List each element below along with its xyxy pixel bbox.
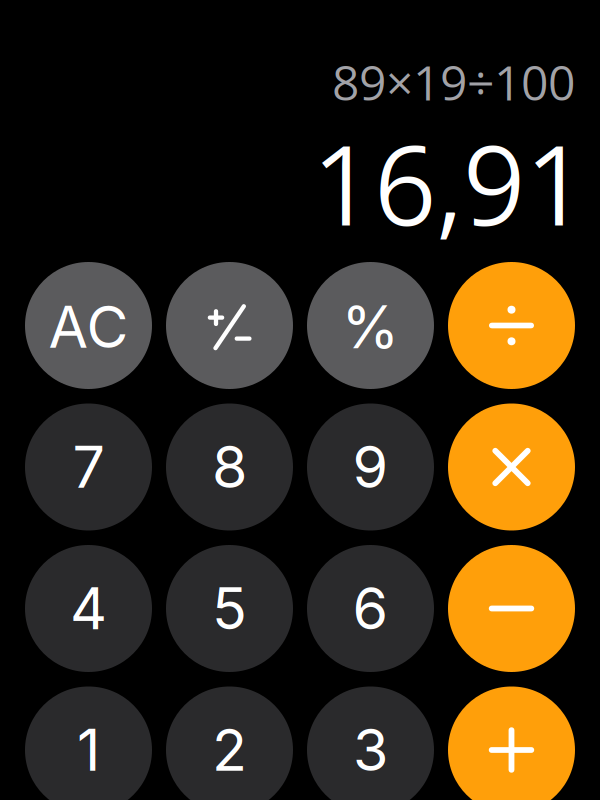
- staticText: 3: [353, 715, 388, 785]
- staticText: 16,91: [312, 108, 587, 257]
- staticText: 8: [212, 432, 247, 502]
- staticText: 6: [352, 574, 388, 643]
- button[interactable]: 1: [25, 686, 152, 800]
- button[interactable]: AC: [25, 262, 152, 389]
- staticText: 5: [212, 574, 247, 643]
- button[interactable]: Plus minus: [166, 262, 293, 389]
- staticText: 2: [212, 715, 247, 785]
- button[interactable]: Divide: [448, 262, 575, 389]
- button[interactable]: 7: [25, 403, 152, 530]
- button[interactable]: Subtract: [448, 545, 575, 672]
- staticText: 89×19÷100: [332, 49, 575, 115]
- button[interactable]: 5: [166, 545, 293, 672]
- staticText: 4: [70, 574, 107, 643]
- button[interactable]: 8: [166, 403, 293, 530]
- staticText: 7: [72, 432, 104, 502]
- staticText: %: [341, 291, 399, 362]
- staticText: AC: [48, 292, 128, 362]
- button[interactable]: 4: [25, 545, 152, 672]
- button[interactable]: 2: [166, 686, 293, 800]
- staticText: 9: [352, 432, 388, 502]
- button[interactable]: 9: [307, 403, 434, 530]
- button[interactable]: Add: [448, 686, 575, 800]
- button[interactable]: %: [307, 262, 434, 389]
- button[interactable]: Multiply: [448, 403, 575, 530]
- button[interactable]: 3: [307, 686, 434, 800]
- button[interactable]: 6: [307, 545, 434, 672]
- staticText: 1: [77, 715, 100, 785]
